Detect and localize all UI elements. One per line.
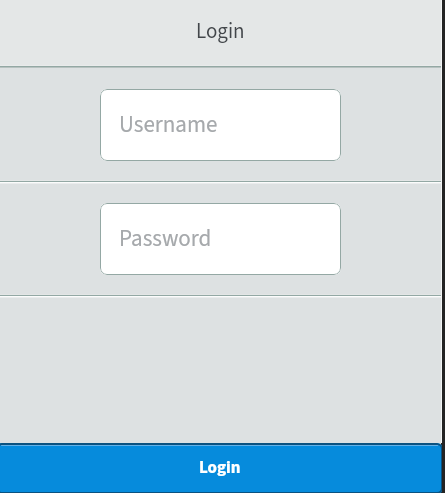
button[interactable]: Username (100, 89, 341, 161)
button[interactable]: Password (100, 203, 341, 275)
staticText: Username (119, 108, 218, 141)
button[interactable]: Login (0, 443, 443, 493)
staticText: Login (199, 456, 241, 480)
staticText: Login (196, 16, 245, 46)
staticText: Password (119, 222, 212, 255)
